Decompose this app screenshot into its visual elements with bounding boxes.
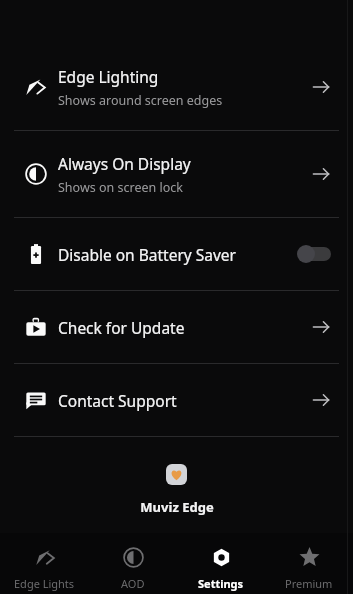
button[interactable]: Edge Lights [0, 533, 89, 594]
other: Open [311, 77, 331, 97]
button[interactable] [297, 244, 331, 264]
staticText: Check for Update [58, 317, 185, 338]
staticText: Contact Support [58, 390, 177, 411]
button[interactable]: Contact Support [0, 364, 353, 436]
staticText: Shows on screen lock [58, 179, 183, 196]
button[interactable]: Settings [177, 533, 265, 594]
button[interactable]: Edge Lighting [0, 44, 353, 130]
other: Open [311, 164, 331, 184]
staticText: Edge Lighting [58, 66, 159, 87]
staticText: Premium [285, 576, 333, 591]
button[interactable]: Always On Display [0, 131, 353, 217]
staticText: Settings [198, 576, 244, 591]
other: Open [311, 317, 331, 337]
button[interactable]: Check for Update [0, 291, 353, 363]
staticText: AOD [121, 576, 145, 591]
staticText: Disable on Battery Saver [58, 244, 236, 265]
staticText: Always On Display [58, 153, 191, 174]
button[interactable]: Disable on Battery Saver [0, 218, 353, 290]
button[interactable]: AOD [89, 533, 177, 594]
other: Open [311, 390, 331, 410]
staticText: Shows around screen edges [58, 92, 223, 109]
staticText: Muviz Edge [140, 498, 214, 516]
button[interactable]: Premium [265, 533, 353, 594]
staticText: Edge Lights [14, 576, 75, 591]
